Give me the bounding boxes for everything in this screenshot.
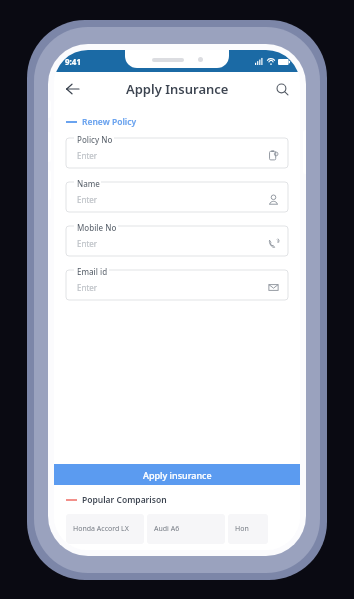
staticText: Mobile No xyxy=(77,222,117,233)
staticText: 9:41 xyxy=(65,56,81,67)
staticText: Enter xyxy=(77,282,98,293)
button[interactable]: Hon xyxy=(228,514,268,544)
button[interactable]: Popular Comparison xyxy=(66,494,167,506)
staticText: Hon xyxy=(235,524,249,534)
staticText: Popular Comparison xyxy=(82,494,167,506)
button[interactable]: Honda Accord LX xyxy=(66,514,144,544)
staticText: Enter xyxy=(77,194,98,205)
staticText: Enter xyxy=(77,238,98,249)
staticText: Honda Accord LX xyxy=(73,524,129,534)
staticText: Name xyxy=(77,178,100,189)
staticText: Renew Policy xyxy=(82,116,137,128)
button[interactable]: Audi A6 xyxy=(147,514,225,544)
staticText: Apply Insurance xyxy=(126,80,229,98)
staticText: Apply insurance xyxy=(143,469,212,481)
staticText: Enter xyxy=(77,150,98,161)
staticText: Policy No xyxy=(77,134,113,145)
staticText: Email id xyxy=(77,266,108,277)
button[interactable]: Renew Policy xyxy=(66,116,137,128)
staticText: Audi A6 xyxy=(154,524,180,534)
button[interactable]: Search xyxy=(268,75,296,103)
button[interactable]: Apply insurance xyxy=(54,464,300,485)
button[interactable]: Back xyxy=(58,75,86,103)
